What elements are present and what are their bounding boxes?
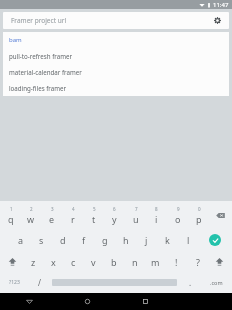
button[interactable]: Settings bbox=[212, 15, 223, 26]
button[interactable]: z bbox=[23, 252, 43, 271]
button[interactable]: j bbox=[136, 230, 157, 249]
staticText: e bbox=[49, 213, 55, 225]
staticText: h bbox=[123, 234, 129, 246]
button[interactable]: Framer project url bbox=[3, 12, 229, 29]
staticText: 8 bbox=[155, 206, 158, 212]
staticText: x bbox=[51, 256, 56, 268]
staticText: .com bbox=[210, 279, 223, 286]
staticText: d bbox=[60, 234, 66, 246]
staticText: 7 bbox=[135, 206, 138, 212]
staticText: l bbox=[187, 234, 190, 246]
button[interactable]: bam bbox=[3, 32, 229, 48]
button[interactable]: / bbox=[28, 274, 50, 291]
staticText: 5 bbox=[93, 206, 96, 212]
button[interactable]: s bbox=[31, 230, 52, 249]
button[interactable]: pull-to-refresh framer bbox=[3, 48, 229, 64]
button[interactable]: b bbox=[103, 252, 124, 271]
staticText: 1 bbox=[10, 206, 13, 212]
button[interactable]: Enter bbox=[199, 230, 231, 249]
button[interactable]: Recents bbox=[116, 293, 174, 310]
staticText: i bbox=[155, 213, 158, 225]
staticText: b bbox=[111, 256, 117, 268]
staticText: m bbox=[151, 256, 160, 268]
button[interactable]: Back bbox=[0, 293, 58, 310]
button[interactable]: 5 bbox=[83, 204, 104, 227]
button[interactable]: 3 bbox=[41, 204, 62, 227]
staticText: j bbox=[145, 234, 148, 246]
button[interactable]: v bbox=[83, 252, 103, 271]
button[interactable]: ! bbox=[166, 252, 187, 271]
staticText: k bbox=[165, 234, 170, 246]
button[interactable]: g bbox=[94, 230, 115, 249]
staticText: ?123 bbox=[9, 279, 20, 286]
button[interactable]: k bbox=[157, 230, 178, 249]
staticText: 0 bbox=[198, 206, 201, 212]
staticText: g bbox=[102, 234, 108, 246]
staticText: u bbox=[133, 213, 139, 225]
button[interactable]: a bbox=[10, 230, 31, 249]
staticText: c bbox=[71, 256, 76, 268]
staticText: o bbox=[175, 213, 181, 225]
staticText: / bbox=[38, 277, 41, 288]
staticText: ? bbox=[196, 256, 200, 268]
staticText: n bbox=[132, 256, 138, 268]
button[interactable]: x bbox=[43, 252, 63, 271]
button[interactable]: Backspace bbox=[209, 204, 231, 227]
button[interactable]: loading-files framer bbox=[3, 80, 229, 96]
staticText: 9 bbox=[177, 206, 180, 212]
button[interactable]: l bbox=[178, 230, 199, 249]
button[interactable]: 4 bbox=[62, 204, 83, 227]
staticText: 6 bbox=[113, 206, 116, 212]
staticText: s bbox=[39, 234, 44, 246]
button[interactable]: ? bbox=[187, 252, 208, 271]
staticText: v bbox=[91, 256, 96, 268]
staticText: loading-files framer bbox=[9, 84, 67, 92]
button[interactable]: 8 bbox=[146, 204, 167, 227]
staticText: p bbox=[196, 213, 202, 225]
button[interactable]: material-calendar framer bbox=[3, 64, 229, 80]
button[interactable]: c bbox=[63, 252, 83, 271]
staticText: 3 bbox=[51, 206, 54, 212]
staticText: Framer project url bbox=[11, 16, 67, 25]
staticText: . bbox=[189, 277, 192, 288]
staticText: 4 bbox=[72, 206, 75, 212]
button[interactable]: 0 bbox=[188, 204, 209, 227]
button[interactable]: d bbox=[52, 230, 73, 249]
button[interactable]: Home bbox=[58, 293, 116, 310]
staticText: f bbox=[82, 234, 86, 246]
button[interactable]: f bbox=[73, 230, 94, 249]
button[interactable]: m bbox=[145, 252, 166, 271]
button[interactable]: 9 bbox=[167, 204, 188, 227]
button[interactable]: . bbox=[179, 274, 201, 291]
button[interactable]: 1 bbox=[1, 204, 21, 227]
staticText: a bbox=[18, 234, 24, 246]
button[interactable]: h bbox=[115, 230, 136, 249]
staticText: 2 bbox=[30, 206, 33, 212]
staticText: q bbox=[8, 213, 14, 225]
button[interactable]: Shift bbox=[208, 252, 231, 271]
staticText: pull-to-refresh framer bbox=[9, 52, 73, 60]
staticText: w bbox=[27, 213, 35, 225]
button[interactable]: Shift bbox=[1, 252, 23, 271]
staticText: t bbox=[92, 213, 96, 225]
button[interactable]: 6 bbox=[104, 204, 125, 227]
button[interactable]: n bbox=[124, 252, 145, 271]
staticText: material-calendar framer bbox=[9, 68, 82, 76]
button[interactable]: 7 bbox=[125, 204, 146, 227]
staticText: ! bbox=[175, 256, 178, 268]
button[interactable]: ?123 bbox=[1, 274, 28, 291]
button[interactable]: .com bbox=[201, 274, 231, 291]
staticText: y bbox=[112, 213, 117, 225]
staticText: z bbox=[31, 256, 36, 268]
staticText: bam bbox=[9, 36, 22, 44]
staticText: 11:47 bbox=[213, 1, 229, 9]
staticText: r bbox=[71, 213, 75, 225]
button[interactable]: 2 bbox=[21, 204, 41, 227]
